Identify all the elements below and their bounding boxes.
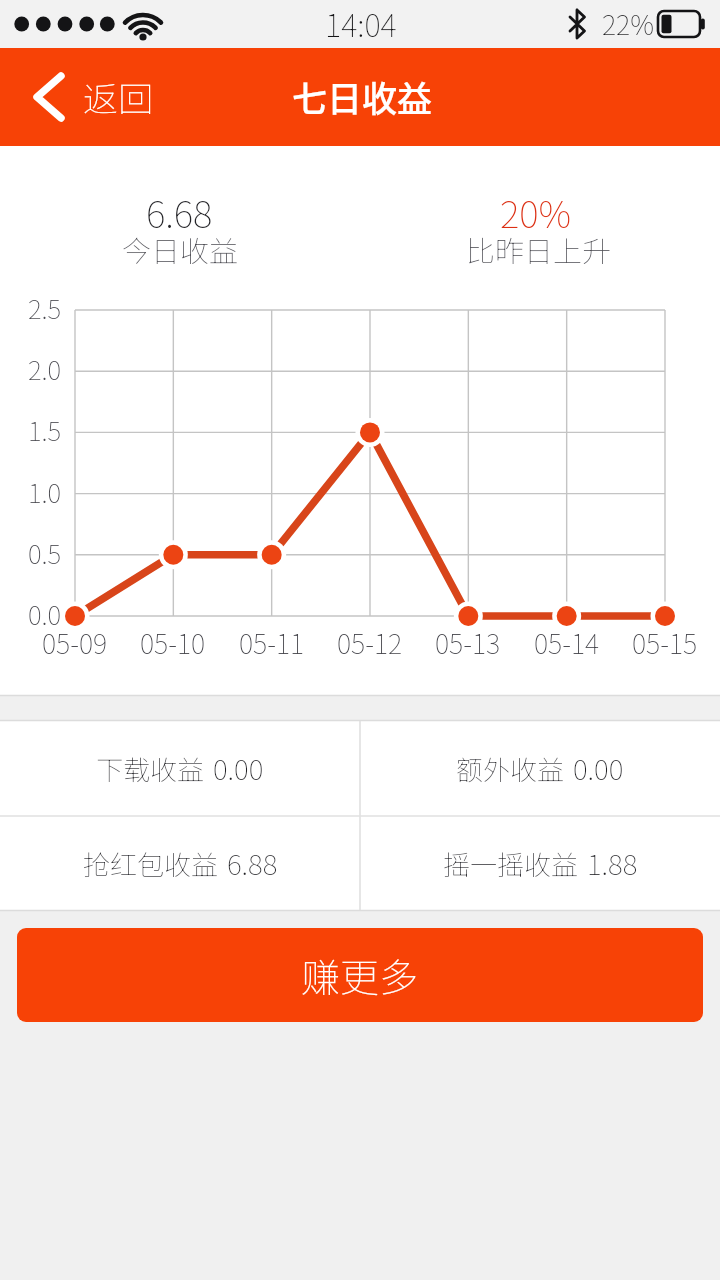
staticText: 0.0 (28, 595, 62, 633)
staticText: 22% (602, 4, 654, 43)
button[interactable]: 赚更多 (17, 928, 703, 1022)
staticText: 05-12 (337, 623, 403, 662)
staticText: 05-13 (435, 623, 501, 662)
staticText: 2.0 (28, 350, 62, 388)
staticText: 抢红包收益 (83, 844, 218, 883)
staticText: 05-11 (239, 623, 305, 662)
staticText: 2.5 (28, 289, 62, 327)
staticText: 6.68 (146, 185, 213, 239)
staticText: 0.00 (213, 748, 264, 789)
button[interactable]: 抢红包收益 (0, 816, 360, 911)
staticText: 14:04 (325, 1, 397, 46)
staticText: 05-09 (42, 623, 108, 662)
staticText: 比昨日上升 (466, 228, 612, 270)
button[interactable]: 摇一摇收益 (360, 816, 720, 911)
staticText: 七日收益 (292, 71, 433, 122)
staticText: 今日收益 (122, 228, 239, 270)
staticText: 0.00 (573, 748, 624, 789)
button[interactable] (20, 50, 170, 144)
staticText: 下载收益 (96, 749, 204, 788)
staticText: 摇一摇收益 (443, 844, 578, 883)
button[interactable]: 额外收益 (360, 721, 720, 816)
staticText: 0.5 (28, 534, 62, 572)
button[interactable]: 下载收益 (0, 721, 360, 816)
staticText: 6.88 (227, 843, 278, 884)
staticText: 赚更多 (301, 947, 419, 1003)
staticText: 05-10 (140, 623, 206, 662)
staticText: 1.0 (28, 473, 62, 511)
staticText: 1.5 (28, 411, 62, 449)
staticText: 05-14 (534, 623, 600, 662)
staticText: 05-15 (632, 623, 698, 662)
staticText: 返回 (83, 71, 154, 122)
staticText: 20% (500, 185, 572, 239)
staticText: 额外收益 (456, 749, 564, 788)
staticText: 1.88 (587, 843, 638, 884)
